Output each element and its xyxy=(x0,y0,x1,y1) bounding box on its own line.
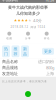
staticText: 10:24 xyxy=(45,0,54,3)
staticText: 评论 xyxy=(44,37,50,40)
button[interactable]: 收藏 xyxy=(0,32,19,40)
staticText: 商品规格 xyxy=(2,65,18,70)
staticText: 发货地址 xyxy=(2,71,18,76)
staticText: 热门 xyxy=(4,46,8,56)
staticText: 黄牛大战代购的那些事 xyxy=(8,5,48,10)
staticText: 商品名称 xyxy=(2,59,18,64)
staticText: 4.0分 xyxy=(33,18,42,23)
button[interactable]: 商品名称 xyxy=(0,59,56,65)
staticText: 新品 xyxy=(23,46,27,56)
staticText: 推荐 xyxy=(13,46,17,56)
staticText: 2018-08-12 阅读 1024 xyxy=(10,25,45,29)
staticText: 更多 xyxy=(44,49,52,54)
button[interactable]: 评论 xyxy=(37,32,56,40)
staticText: 以上信息仅供参考，请以实物为准 xyxy=(2,80,47,83)
staticText: 进口奶粉 xyxy=(38,59,54,64)
staticText: 儿你知道多少 xyxy=(16,11,40,16)
staticText: 收藏 xyxy=(6,37,12,40)
button[interactable]: 商品规格 xyxy=(0,65,56,71)
staticText: 中国移动 xyxy=(2,0,18,2)
staticText: 上海 xyxy=(46,71,54,76)
staticText: 分享 xyxy=(25,37,31,40)
button[interactable]: 分享 xyxy=(19,32,37,40)
staticText: 800g xyxy=(46,65,54,70)
button[interactable]: 发货地址 xyxy=(0,71,56,77)
